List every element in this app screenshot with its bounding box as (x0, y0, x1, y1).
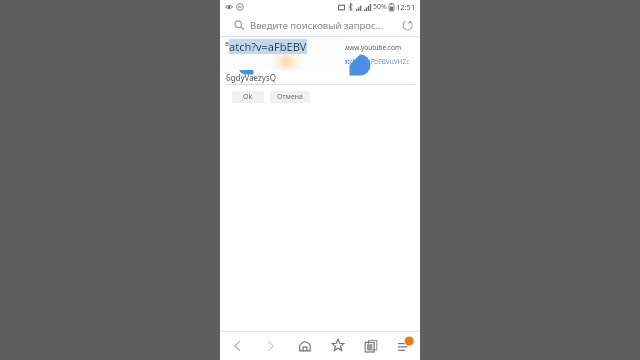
staticText: в (226, 43, 230, 52)
staticText: com/watch?v= (323, 57, 367, 66)
button[interactable]: Home (288, 332, 321, 360)
button[interactable]: Ok (232, 91, 264, 103)
button[interactable]: Menu (387, 332, 420, 360)
button[interactable]: Forward (254, 332, 288, 360)
other: Search (234, 20, 244, 30)
staticText: Введите поисковый запрос... (250, 19, 394, 32)
staticText: Отмена (277, 92, 304, 102)
staticText: 12:51 (396, 2, 416, 12)
staticText: aFbEBVuVHZc (367, 57, 410, 66)
button[interactable]: в (223, 38, 345, 70)
button[interactable]: Back (220, 332, 254, 360)
staticText: atch?v=aFbEBV (229, 39, 307, 54)
button[interactable]: Reload (398, 16, 416, 34)
staticText: 6gdyVaezysQ (226, 72, 276, 83)
button[interactable]: Tabs (354, 332, 387, 360)
staticText: Ok (243, 92, 253, 102)
button[interactable]: Search (220, 14, 420, 36)
staticText: 50% (373, 2, 387, 12)
staticText: в (225, 39, 229, 49)
button[interactable]: Отмена (270, 91, 310, 103)
button[interactable]: Bookmarks (321, 332, 354, 360)
staticText: во с www.youtube.com (330, 43, 402, 52)
